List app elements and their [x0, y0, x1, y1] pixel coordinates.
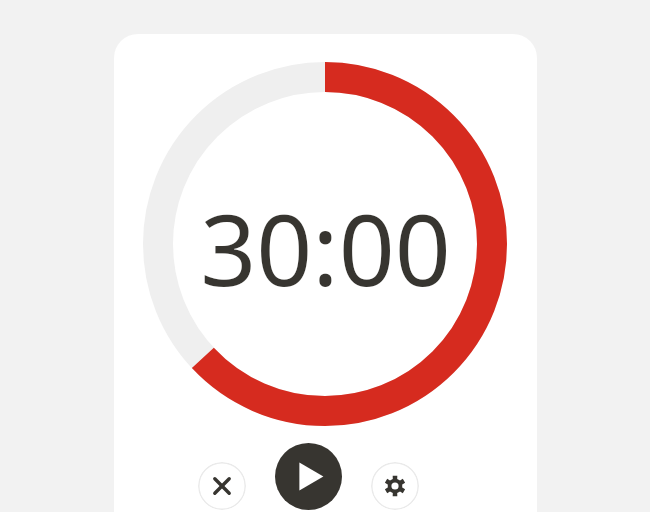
- button[interactable]: Start timer: [275, 443, 342, 510]
- button[interactable]: Timer settings: [371, 462, 419, 510]
- staticText: 30:00: [200, 181, 451, 309]
- button[interactable]: Cancel timer: [198, 462, 246, 510]
